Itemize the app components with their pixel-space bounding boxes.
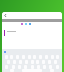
button[interactable]: Back xyxy=(2,12,9,19)
